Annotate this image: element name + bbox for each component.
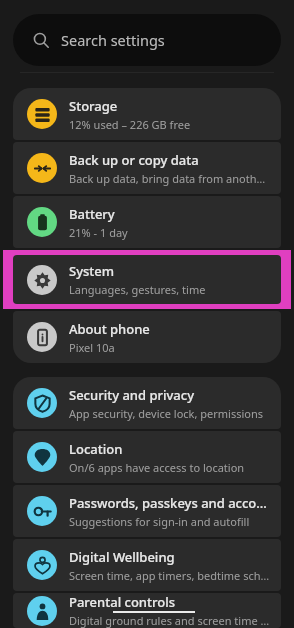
staticText: Battery	[69, 205, 115, 223]
staticText: About phone	[69, 320, 150, 338]
staticText: Screen time, app timers, bedtime schedul…	[69, 568, 271, 583]
staticText: Search settings	[61, 30, 165, 50]
staticText: Security and privacy	[69, 386, 195, 404]
staticText: 21% - 1 day	[69, 225, 128, 240]
button[interactable]: Location	[13, 431, 281, 483]
button[interactable]: Battery	[13, 196, 281, 248]
staticText: Languages, gestures, time	[69, 282, 206, 297]
staticText: On/6 apps have access to location	[69, 460, 245, 475]
button[interactable]: Back up or copy data	[13, 142, 281, 194]
staticText: Digital Wellbeing	[69, 548, 175, 566]
staticText: Parental controls	[69, 593, 175, 611]
staticText: Back up or copy data	[69, 151, 199, 169]
button[interactable]: Storage	[13, 88, 281, 140]
button[interactable]: Digital Wellbeing	[13, 539, 281, 591]
button[interactable]: Search settings	[13, 14, 281, 66]
staticText: Storage	[69, 97, 118, 115]
staticText: App security, device lock, permissions	[69, 406, 264, 421]
button[interactable]: About phone	[13, 311, 281, 363]
staticText: Suggestions for sign-in and autofill	[69, 514, 250, 529]
button[interactable]: System	[13, 255, 281, 304]
button[interactable]: Security and privacy	[13, 377, 281, 429]
staticText: Location	[69, 440, 123, 458]
button[interactable]: Passwords, passkeys and accounts	[13, 485, 281, 537]
staticText: Passwords, passkeys and accounts	[69, 494, 271, 512]
staticText: Back up data, bring data from another de…	[69, 171, 271, 186]
staticText: System	[69, 262, 115, 280]
staticText: Digital ground rules and screen time lim…	[69, 613, 271, 628]
staticText: Pixel 10a	[69, 340, 115, 355]
staticText: 12% used – 226 GB free	[69, 117, 191, 132]
button[interactable]: Parental controls	[13, 593, 281, 628]
